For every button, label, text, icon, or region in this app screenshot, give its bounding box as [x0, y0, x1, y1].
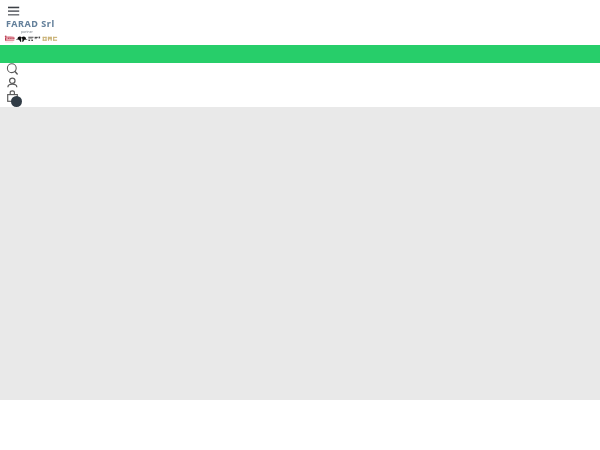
button[interactable]: Open navigation menu — [6, 4, 21, 18]
button[interactable]: Search — [6, 63, 19, 75]
button[interactable]: Shopping cart — [6, 89, 20, 103]
button[interactable]: Cart items — [11, 96, 22, 107]
staticText: partner — [21, 29, 34, 34]
button[interactable]: My account — [6, 76, 20, 88]
staticText: FARAD Srl — [6, 17, 55, 29]
